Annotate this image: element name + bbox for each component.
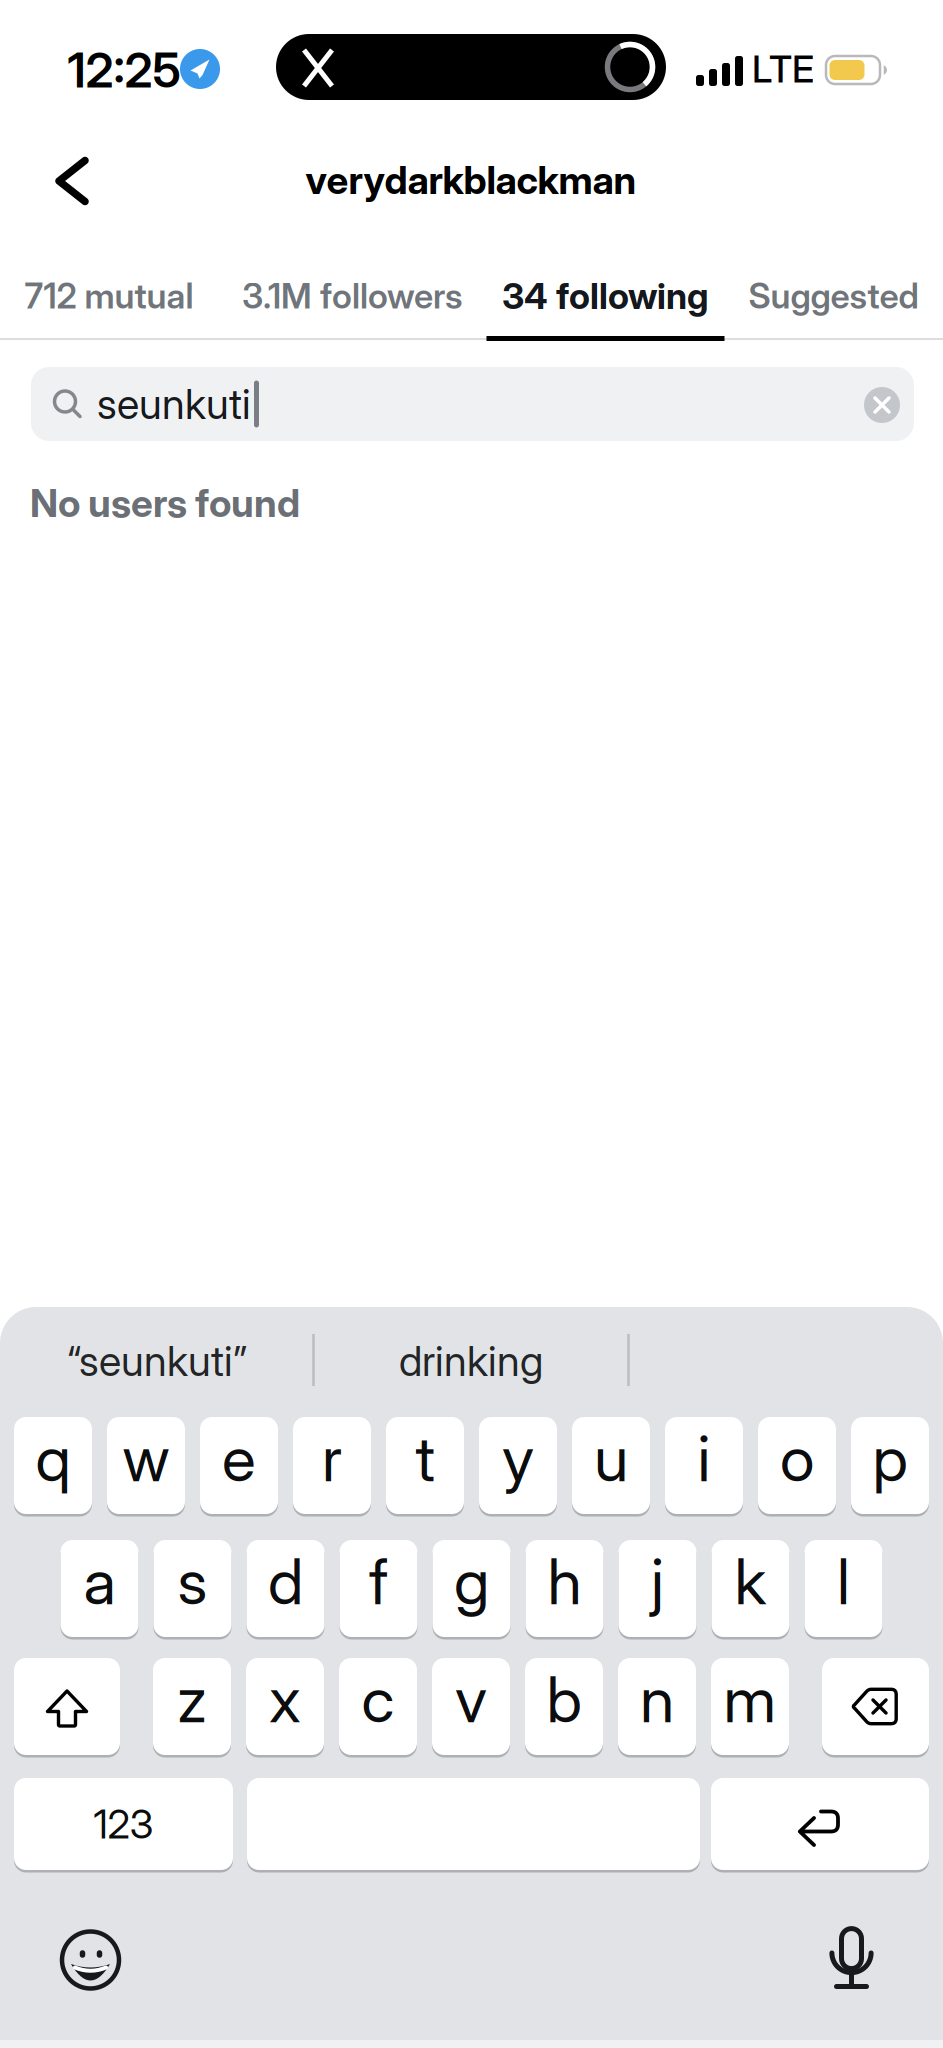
- button[interactable]: 712 mutual: [24, 276, 193, 316]
- button[interactable]: x: [246, 1658, 324, 1755]
- button[interactable]: [822, 1658, 929, 1755]
- button[interactable]: h: [525, 1540, 603, 1637]
- button[interactable]: b: [525, 1658, 603, 1755]
- staticText: “seunkuti”: [67, 1337, 247, 1385]
- button[interactable]: j: [618, 1540, 696, 1637]
- staticText: i: [697, 1421, 710, 1495]
- staticText: a: [83, 1544, 115, 1618]
- staticText: 123: [93, 1800, 153, 1848]
- button[interactable]: [864, 387, 900, 423]
- button[interactable]: p: [851, 1417, 929, 1514]
- staticText: j: [651, 1544, 664, 1618]
- button[interactable]: [711, 1778, 929, 1870]
- button[interactable]: [14, 1658, 120, 1755]
- staticText: n: [640, 1662, 674, 1736]
- button[interactable]: u: [572, 1417, 650, 1514]
- staticText: p: [872, 1421, 907, 1495]
- button[interactable]: drinking: [399, 1337, 543, 1385]
- staticText: e: [222, 1421, 256, 1495]
- staticText: m: [723, 1662, 776, 1736]
- button[interactable]: [829, 1926, 873, 1990]
- button[interactable]: g: [432, 1540, 510, 1637]
- staticText: 3.1M followers: [242, 276, 463, 316]
- button[interactable]: m: [711, 1658, 789, 1755]
- button[interactable]: o: [758, 1417, 836, 1514]
- staticText: x: [269, 1662, 301, 1736]
- staticText: v: [455, 1662, 487, 1736]
- staticText: Suggested: [748, 276, 918, 316]
- button[interactable]: Suggested: [748, 276, 918, 316]
- staticText: 12:25: [67, 42, 180, 98]
- staticText: r: [322, 1421, 342, 1495]
- button[interactable]: w: [107, 1417, 185, 1514]
- staticText: s: [177, 1544, 207, 1618]
- staticText: y: [502, 1421, 534, 1495]
- staticText: seunkuti: [97, 380, 251, 428]
- button[interactable]: a: [60, 1540, 138, 1637]
- staticText: k: [734, 1544, 766, 1618]
- button[interactable]: [59, 1929, 121, 1991]
- button[interactable]: “seunkuti”: [67, 1337, 247, 1385]
- button[interactable]: k: [711, 1540, 789, 1637]
- button[interactable]: q: [14, 1417, 92, 1514]
- staticText: c: [361, 1662, 394, 1736]
- staticText: l: [837, 1544, 850, 1618]
- button[interactable]: v: [432, 1658, 510, 1755]
- staticText: f: [369, 1544, 388, 1618]
- button[interactable]: 123: [14, 1778, 233, 1870]
- staticText: No users found: [30, 480, 300, 526]
- staticText: h: [547, 1544, 581, 1618]
- button[interactable]: seunkuti: [31, 367, 914, 441]
- button[interactable]: [247, 1776, 700, 1871]
- button[interactable]: i: [665, 1417, 743, 1514]
- button[interactable]: s: [153, 1540, 231, 1637]
- button[interactable]: y: [479, 1417, 557, 1514]
- button[interactable]: 34 following: [502, 275, 709, 317]
- button[interactable]: c: [339, 1658, 417, 1755]
- button[interactable]: l: [804, 1540, 882, 1637]
- staticText: LTE: [752, 47, 814, 91]
- staticText: 712 mutual: [24, 276, 193, 316]
- button[interactable]: f: [339, 1540, 417, 1637]
- button[interactable]: r: [293, 1417, 371, 1514]
- staticText: z: [177, 1662, 207, 1736]
- staticText: q: [35, 1421, 70, 1495]
- button[interactable]: 3.1M followers: [242, 276, 463, 316]
- staticText: 34 following: [502, 275, 709, 317]
- staticText: b: [546, 1662, 581, 1736]
- staticText: drinking: [399, 1337, 543, 1385]
- staticText: d: [268, 1544, 303, 1618]
- staticText: g: [454, 1544, 489, 1618]
- button[interactable]: e: [200, 1417, 278, 1514]
- staticText: u: [594, 1421, 628, 1495]
- button[interactable]: [47, 148, 97, 213]
- button[interactable]: z: [153, 1658, 231, 1755]
- staticText: o: [780, 1421, 814, 1495]
- staticText: w: [122, 1421, 169, 1495]
- button[interactable]: t: [386, 1417, 464, 1514]
- button[interactable]: n: [618, 1658, 696, 1755]
- button[interactable]: d: [246, 1540, 324, 1637]
- staticText: t: [415, 1421, 434, 1495]
- staticText: verydarkblackman: [305, 157, 636, 203]
